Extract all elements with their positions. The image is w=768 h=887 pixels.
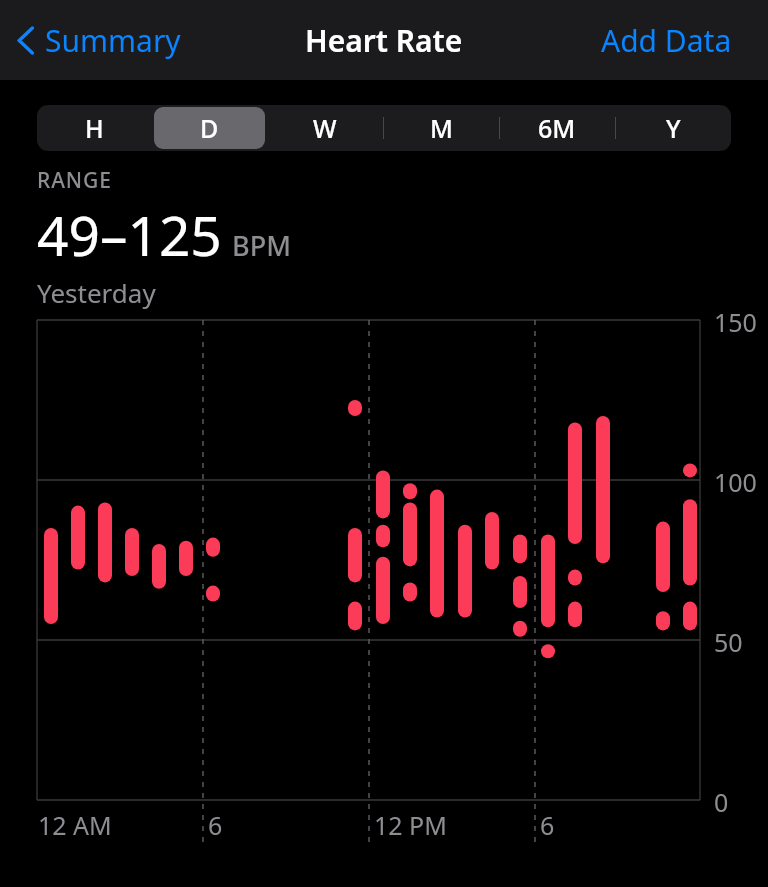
staticText: 6M (538, 111, 576, 145)
button[interactable]: M (383, 105, 499, 151)
staticText: 150 (714, 305, 757, 339)
staticText: RANGE (37, 166, 112, 195)
staticText: 100 (714, 465, 757, 499)
staticText: 50 (714, 625, 743, 659)
other: Back (16, 24, 36, 57)
staticText: 0 (714, 785, 729, 819)
button[interactable]: W (267, 105, 383, 151)
staticText: Y (666, 111, 681, 145)
staticText: 49–125 (37, 197, 222, 272)
button[interactable]: H (37, 105, 152, 151)
staticText: Heart Rate (305, 20, 463, 61)
staticText: M (430, 111, 453, 145)
staticText: BPM (232, 227, 291, 264)
button[interactable]: Y (615, 105, 731, 151)
staticText: Add Data (601, 20, 732, 61)
staticText: 12 PM (374, 808, 447, 842)
staticText: Yesterday (37, 275, 156, 310)
button[interactable]: D (152, 105, 267, 151)
button[interactable]: Add Data (589, 8, 768, 73)
staticText: W (313, 111, 337, 145)
staticText: 6 (208, 808, 223, 842)
button[interactable]: 6M (499, 105, 615, 151)
staticText: 6 (540, 808, 555, 842)
staticText: H (85, 111, 104, 145)
button[interactable]: Back (0, 8, 193, 73)
staticText: 12 AM (38, 808, 112, 842)
staticText: D (200, 111, 219, 145)
staticText: Summary (45, 20, 181, 61)
